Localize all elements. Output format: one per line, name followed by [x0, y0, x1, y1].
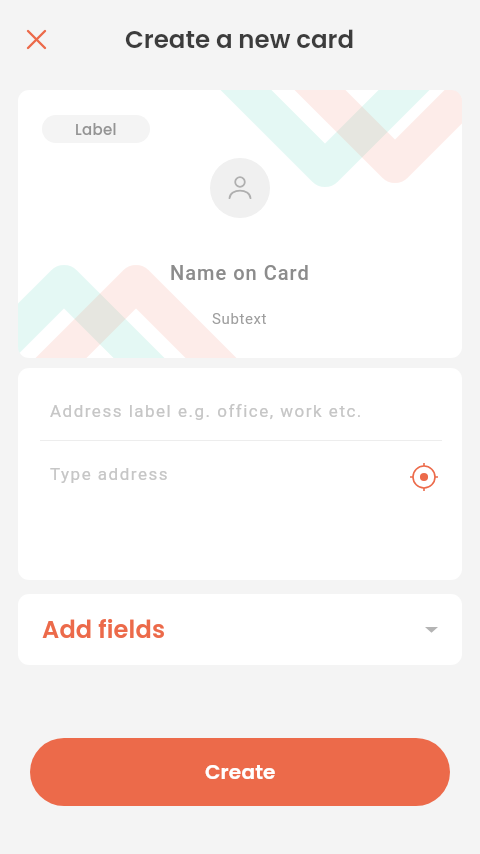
staticText: Address label e.g. office, work etc.	[50, 401, 363, 421]
staticText: Type address	[50, 464, 406, 484]
button[interactable]: Create	[30, 738, 450, 806]
button[interactable]: Use current location	[406, 456, 442, 492]
staticText: Create a new card	[125, 22, 355, 56]
button[interactable]: Close	[16, 19, 56, 59]
button[interactable]: Add fields	[18, 594, 462, 665]
staticText: Label	[75, 119, 117, 140]
staticText: Name on Card	[170, 261, 310, 284]
button[interactable]: Address label e.g. office, work etc.	[40, 368, 442, 440]
staticText: Subtext	[212, 310, 268, 328]
staticText: Create	[205, 758, 276, 786]
button[interactable]: Type address	[40, 441, 442, 503]
staticText: Add fields	[42, 613, 425, 647]
